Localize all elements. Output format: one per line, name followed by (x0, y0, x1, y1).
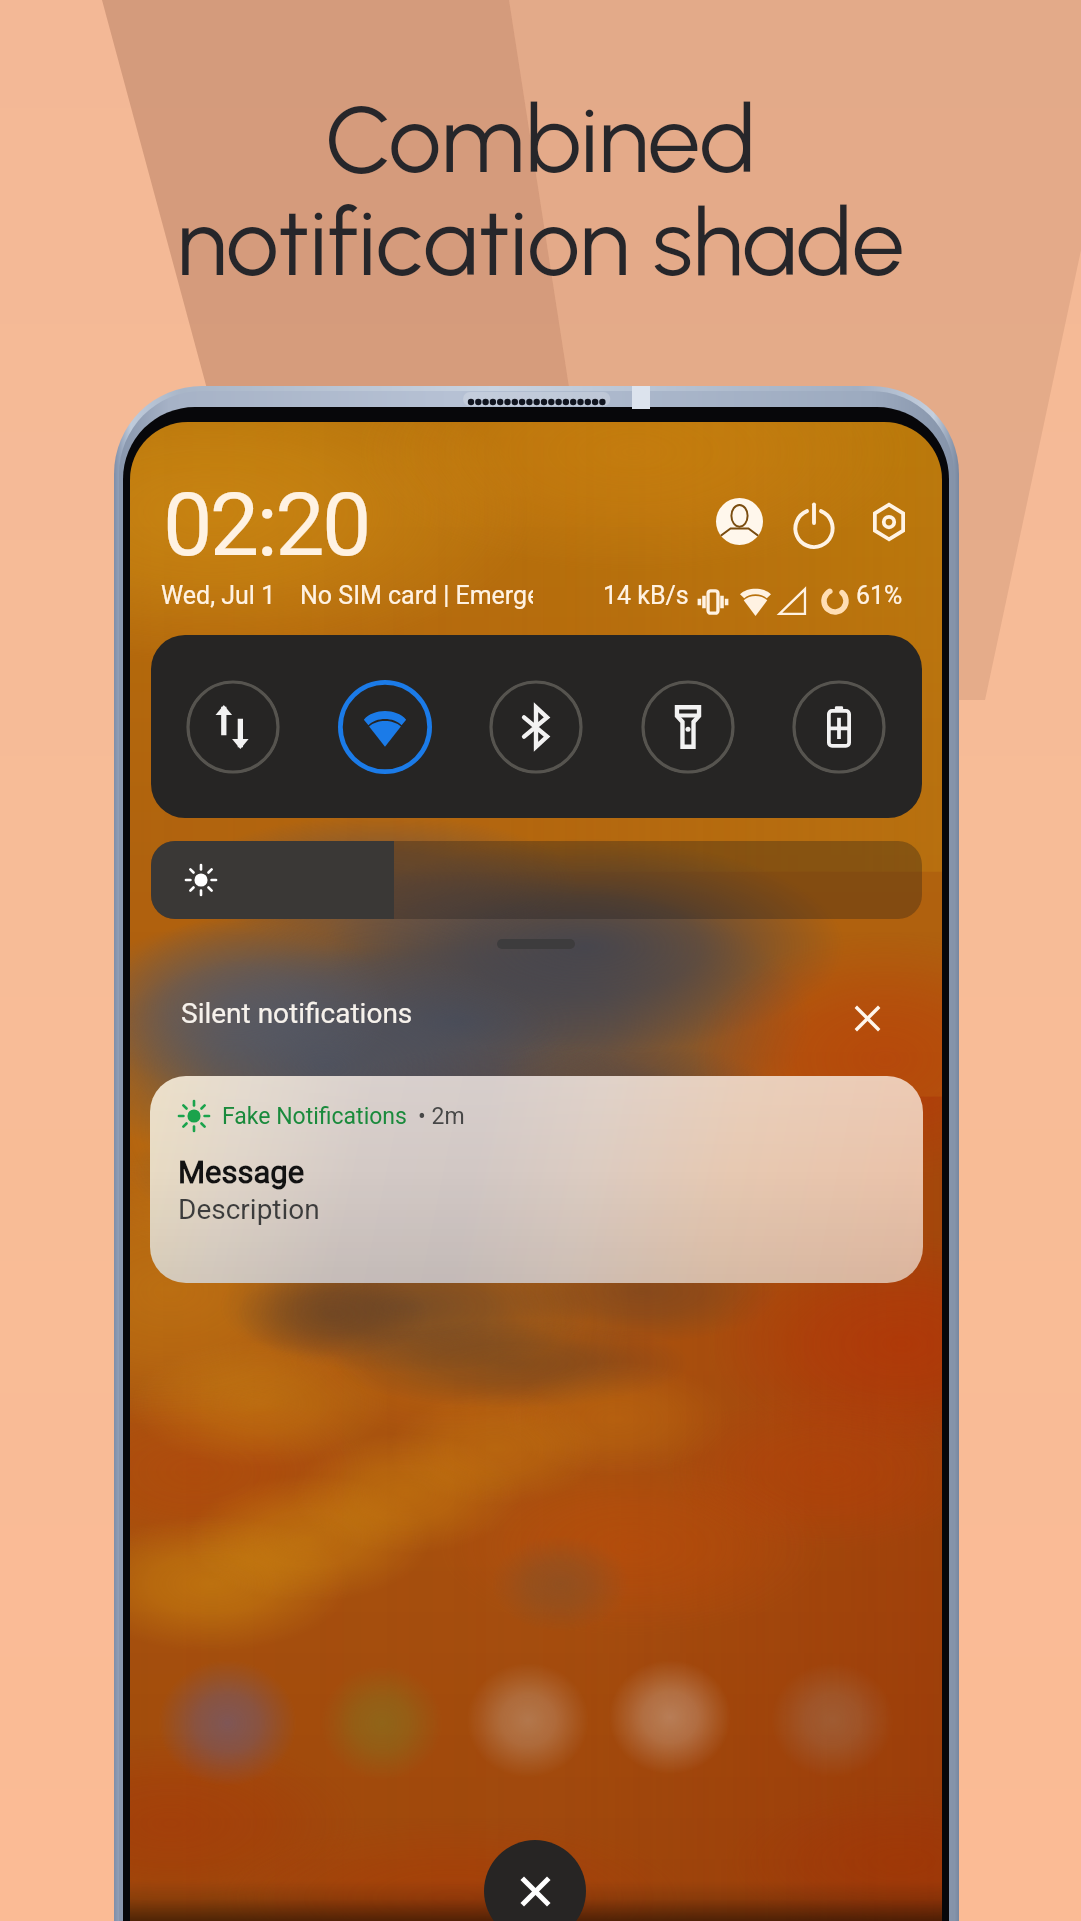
button[interactable]: Mobile data (186, 680, 280, 774)
button[interactable]: Battery saver (792, 680, 886, 774)
staticText: 02:20 (163, 473, 369, 576)
button[interactable]: Brightness (151, 841, 922, 919)
staticText: 14 kB/s (603, 581, 689, 610)
staticText: 61% (856, 581, 903, 610)
button[interactable]: Power (787, 496, 841, 550)
button[interactable]: Wi-Fi (338, 680, 432, 774)
staticText: Message (178, 1154, 305, 1190)
button[interactable]: Clear all notifications (837, 988, 897, 1048)
staticText: Wed, Jul 1 No SIM card | Emergenc (161, 581, 533, 610)
button[interactable]: Flashlight (641, 680, 735, 774)
staticText: • 2m (418, 1103, 465, 1130)
button[interactable]: Settings (864, 497, 914, 547)
button[interactable]: User profile (716, 498, 763, 545)
button[interactable]: Fake Notifications (150, 1076, 923, 1283)
staticText: Description (178, 1193, 320, 1226)
staticText: Silent notifications (181, 997, 413, 1030)
staticText: Fake Notifications (222, 1103, 407, 1130)
staticText: Combined notification shade (0, 83, 1081, 298)
button[interactable]: Bluetooth (489, 680, 583, 774)
button[interactable]: Close notification shade (484, 1840, 586, 1921)
